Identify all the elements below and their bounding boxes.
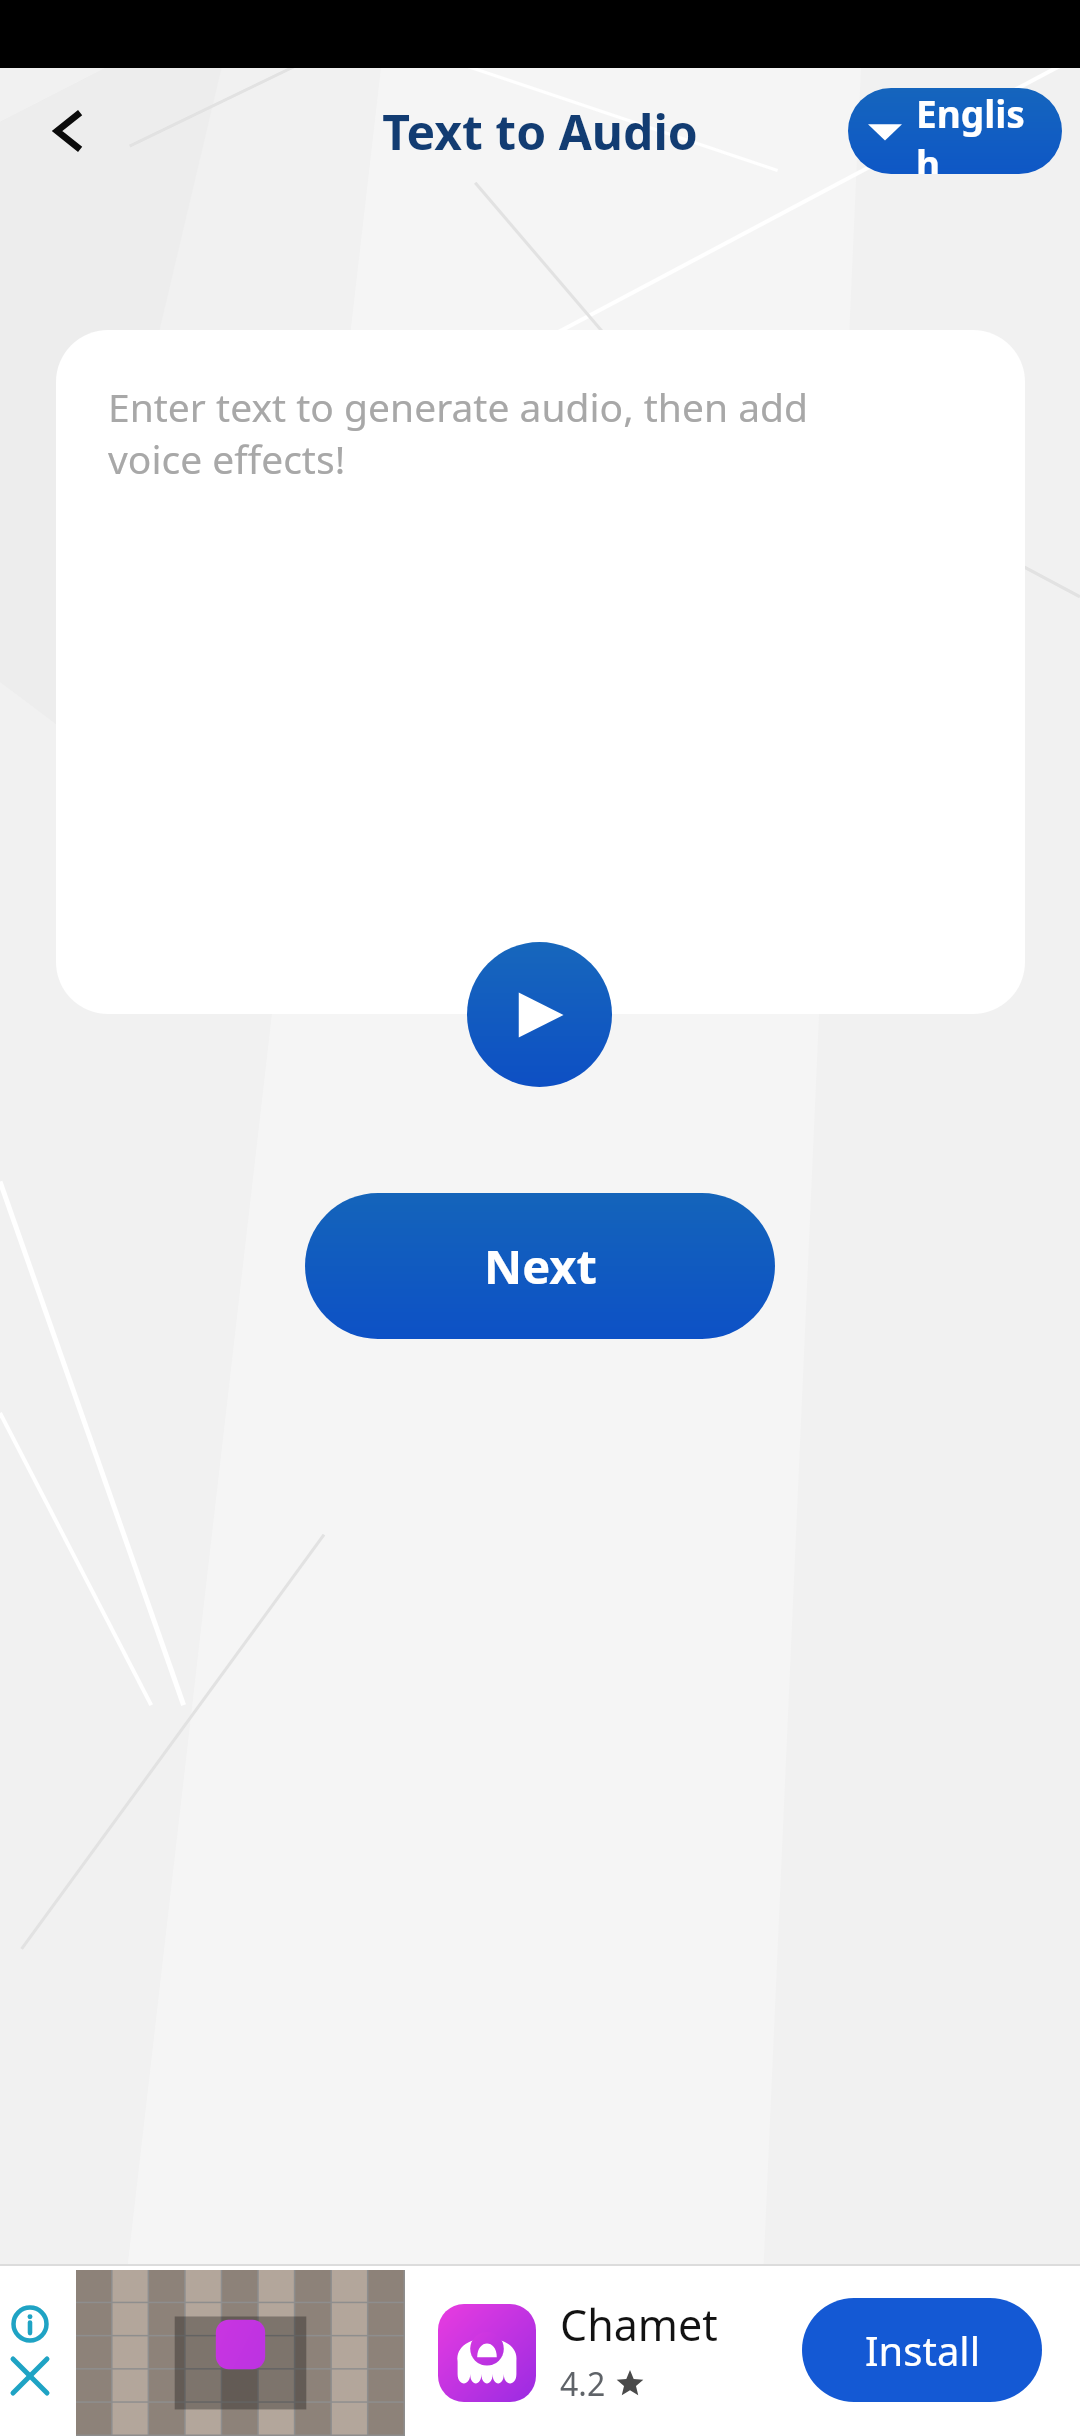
button[interactable]: Close ad	[4, 2350, 56, 2402]
button[interactable]: Enter text to generate audio, then add v…	[56, 330, 1025, 1014]
staticText: Next	[484, 1234, 597, 1298]
staticText: 4.2	[560, 2362, 606, 2406]
staticText: English	[916, 88, 1042, 174]
button[interactable]: Install	[802, 2298, 1042, 2402]
staticText: Enter text to generate audio, then add v…	[108, 380, 908, 485]
staticText: Install	[865, 2323, 980, 2377]
staticText: Chamet	[560, 2295, 718, 2354]
staticText: Text to Audio	[382, 99, 698, 164]
button[interactable]: Play	[467, 942, 612, 1087]
button[interactable]: Ad information	[4, 2298, 56, 2350]
button[interactable]: English	[848, 88, 1062, 174]
button[interactable]: Ad information	[0, 2264, 1080, 2436]
button[interactable]: Next	[305, 1193, 775, 1339]
button[interactable]: Back	[22, 83, 118, 179]
